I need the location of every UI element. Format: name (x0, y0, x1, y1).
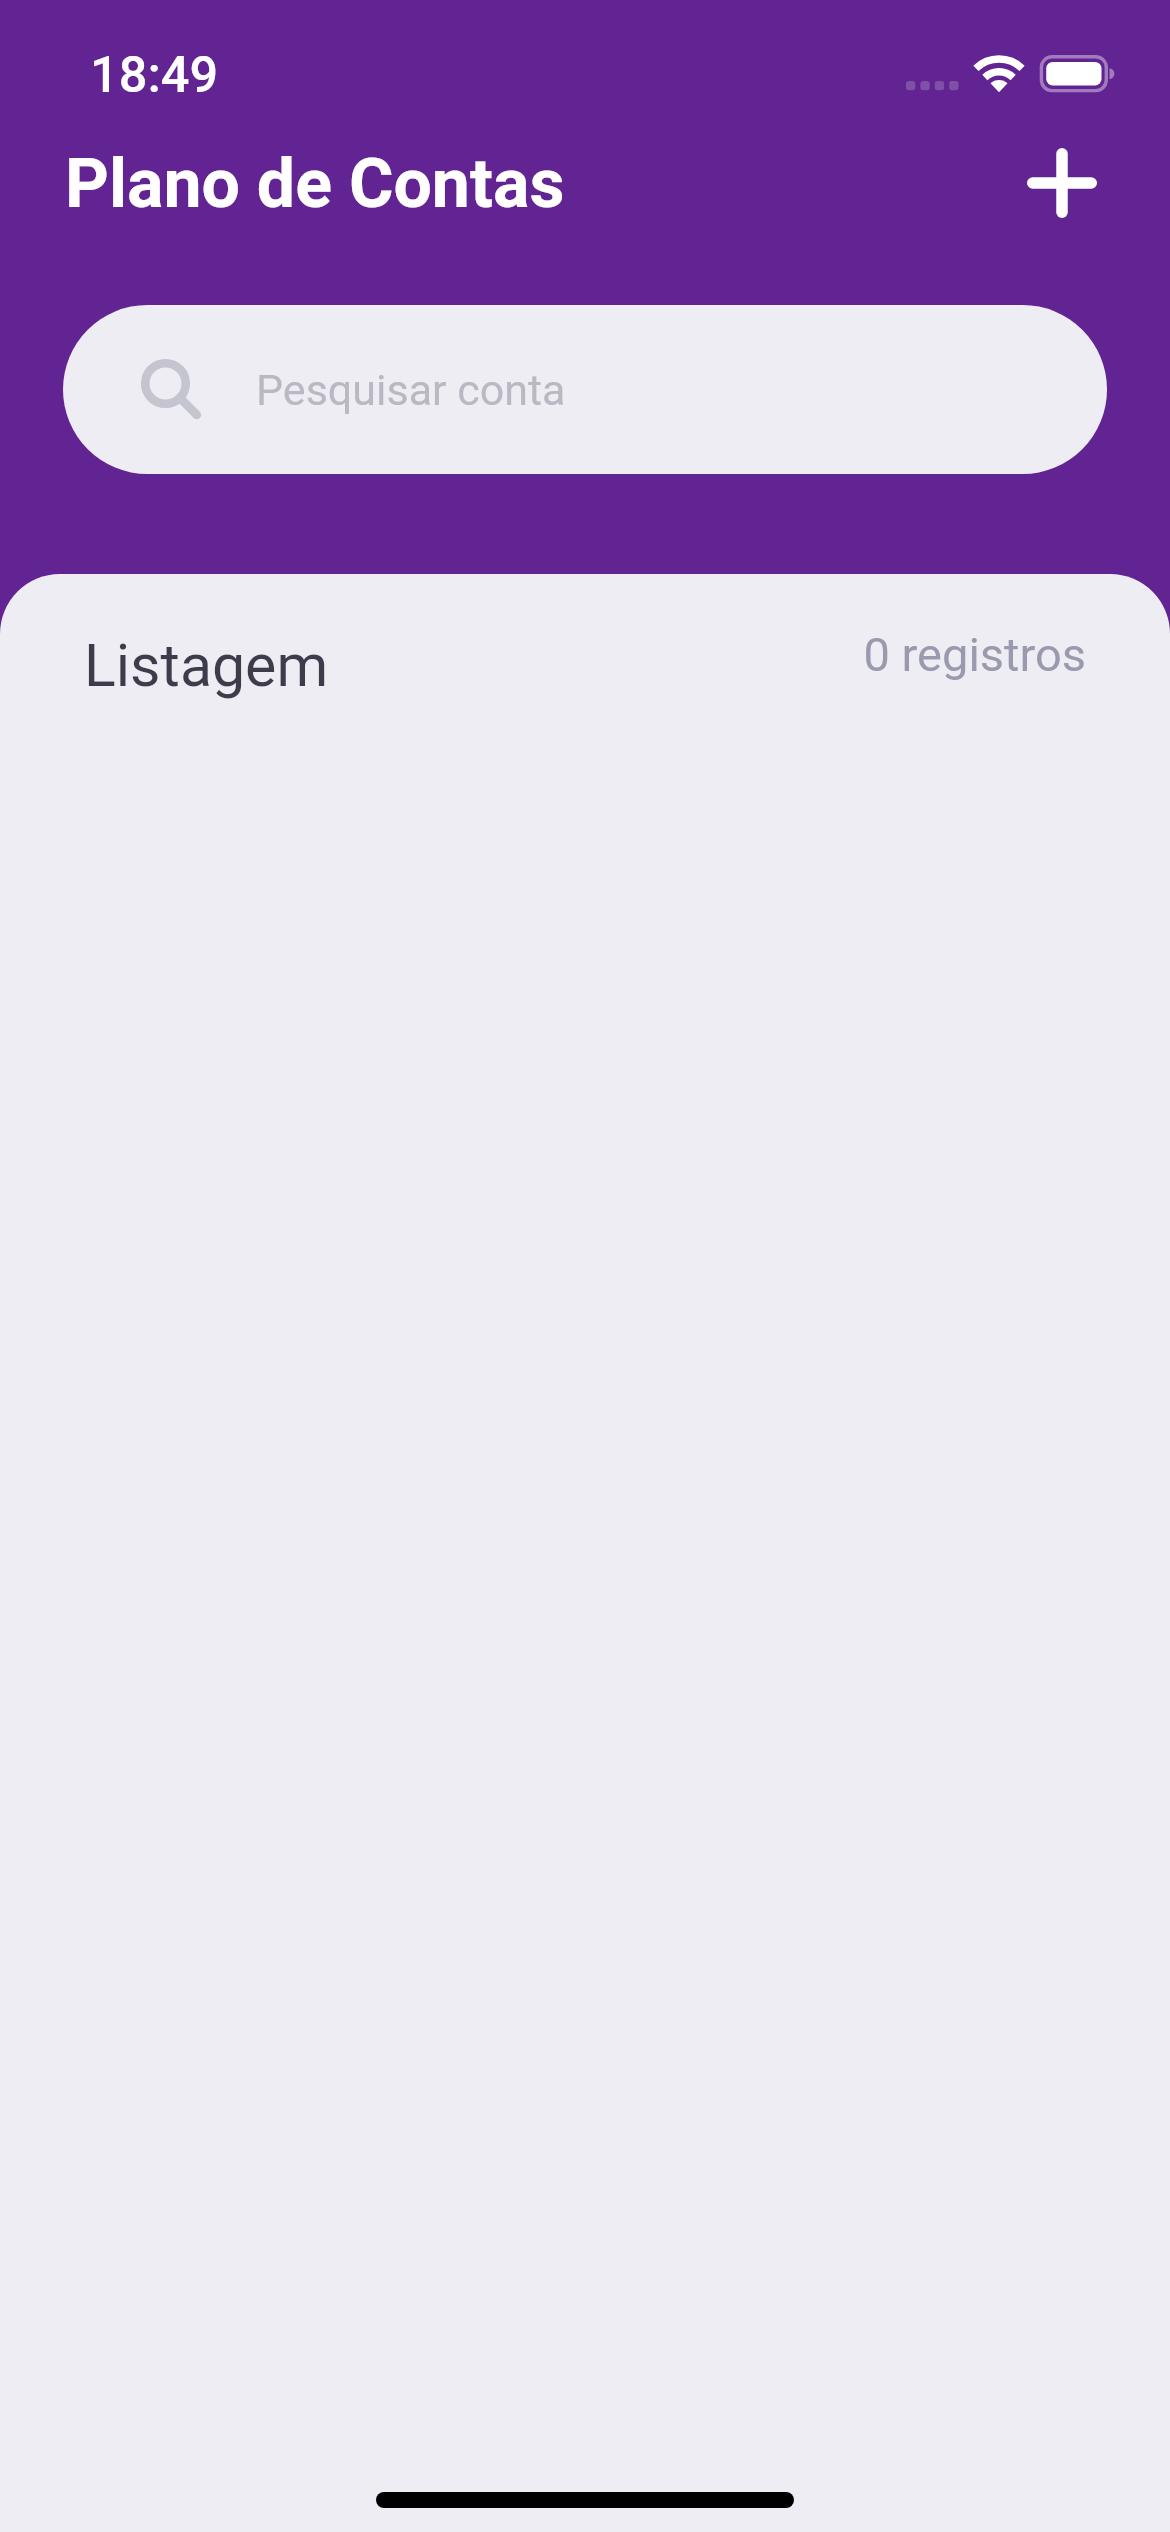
staticText: 18:49 (90, 45, 219, 104)
staticText: Listagem (84, 631, 329, 700)
staticText: Pesquisar conta (256, 365, 566, 415)
staticText: Plano de Contas (65, 144, 565, 224)
staticText: 0 registros (863, 627, 1086, 682)
button[interactable]: Adicionar conta (1002, 123, 1122, 243)
button[interactable]: Pesquisar conta (63, 305, 1107, 474)
